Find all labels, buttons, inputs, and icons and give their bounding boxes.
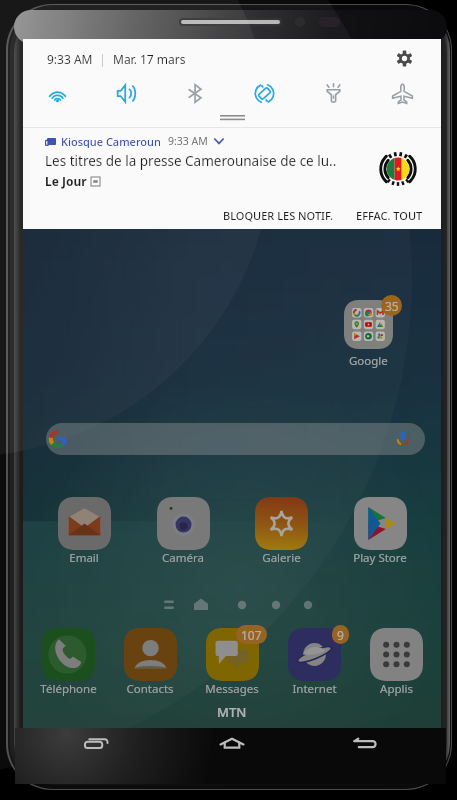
button[interactable]: Auto rotate bbox=[230, 77, 299, 109]
button[interactable]: Caméra bbox=[146, 497, 220, 566]
staticText: 9 bbox=[337, 627, 344, 643]
button[interactable]: Galerie bbox=[244, 497, 318, 566]
staticText: Le Jour bbox=[45, 173, 87, 189]
staticText: Applis bbox=[380, 681, 413, 697]
button[interactable]: 9 bbox=[277, 628, 351, 697]
button[interactable]: BLOQUER LES NOTIF. bbox=[217, 205, 340, 226]
button[interactable]: Bluetooth bbox=[161, 77, 230, 109]
staticText: Google bbox=[349, 353, 388, 369]
staticText: Caméra bbox=[162, 550, 204, 566]
staticText: EFFAC. TOUT bbox=[356, 208, 423, 223]
button[interactable]: Back bbox=[343, 728, 387, 758]
staticText: Kiosque Cameroun bbox=[61, 134, 161, 148]
button[interactable]: EFFAC. TOUT bbox=[352, 205, 427, 226]
button[interactable]: Contacts bbox=[113, 628, 187, 697]
button[interactable]: Téléphone bbox=[31, 628, 105, 697]
button[interactable]: Applis bbox=[359, 628, 433, 697]
button[interactable]: Home bbox=[210, 728, 254, 758]
staticText: Contacts bbox=[126, 681, 174, 697]
staticText: Les titres de la presse Camerounaise de … bbox=[45, 152, 337, 170]
staticText: 9:33 AM bbox=[47, 51, 93, 67]
button[interactable]: Flashlight bbox=[299, 77, 368, 109]
staticText: Play Store bbox=[353, 550, 407, 566]
button[interactable]: Email bbox=[47, 497, 121, 566]
button[interactable]: Sound bbox=[92, 77, 161, 109]
staticText: Messages bbox=[205, 681, 259, 697]
button[interactable]: Settings bbox=[392, 46, 417, 71]
staticText: 35 bbox=[385, 298, 399, 314]
staticText: BLOQUER LES NOTIF. bbox=[223, 208, 334, 223]
staticText: MTN bbox=[217, 703, 247, 721]
button[interactable]: Airplane mode bbox=[368, 77, 437, 109]
staticText: | bbox=[93, 51, 113, 67]
staticText: Galerie bbox=[262, 550, 301, 566]
staticText: Mar. 17 mars bbox=[113, 51, 186, 67]
button[interactable]: 35 bbox=[335, 300, 401, 369]
button[interactable] bbox=[46, 423, 425, 455]
staticText: Email bbox=[69, 550, 99, 566]
staticText: 107 bbox=[241, 627, 262, 643]
button[interactable]: Recent apps bbox=[74, 728, 118, 758]
button[interactable]: 107 bbox=[195, 628, 269, 697]
staticText: 9:33 AM bbox=[168, 134, 208, 148]
staticText: Internet bbox=[292, 681, 337, 697]
button[interactable]: Play Store bbox=[343, 497, 417, 566]
staticText: Téléphone bbox=[40, 681, 97, 697]
button[interactable]: Wi-Fi bbox=[23, 77, 92, 109]
